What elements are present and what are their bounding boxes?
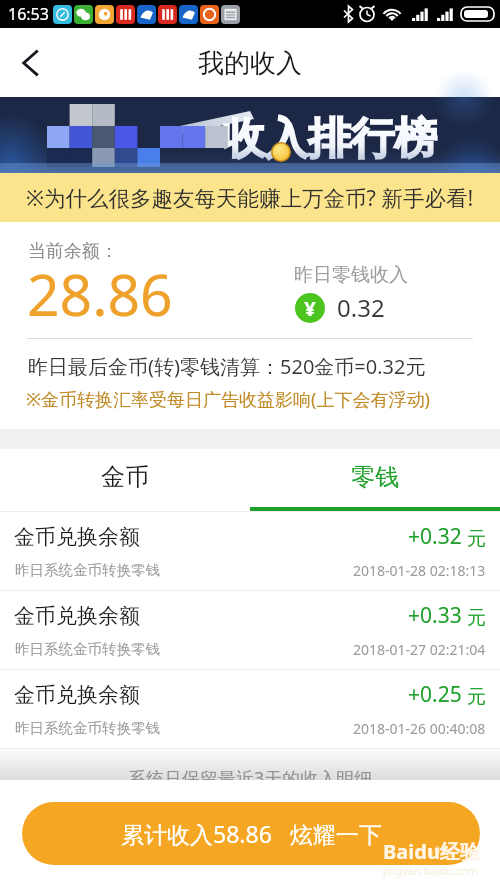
staticText: ※金币转换汇率受每日广告收益影响(上下会有浮动): [26, 387, 430, 412]
staticText: 2018-01-28 02:18:13: [353, 561, 486, 580]
button[interactable]: 金币: [0, 449, 250, 511]
button[interactable]: 金币兑换余额: [0, 591, 500, 669]
staticText: 我的收入: [198, 47, 302, 80]
staticText: 当前余额：: [28, 240, 118, 263]
staticText: 金币兑换余额: [14, 682, 140, 708]
staticText: 零钱: [351, 462, 399, 492]
staticText: +0.25: [408, 680, 462, 709]
staticText: 元: [467, 606, 486, 630]
button[interactable]: ※为什么很多趣友每天能赚上万金币? 新手必看!: [0, 173, 500, 222]
staticText: 2018-01-27 02:21:04: [353, 640, 486, 659]
button[interactable]: 收入排行榜: [0, 97, 500, 173]
staticText: Baidu经验: [383, 838, 480, 865]
staticText: 16:53: [8, 3, 49, 25]
staticText: 昨日系统金币转换零钱: [15, 561, 160, 579]
staticText: 金币兑换余额: [14, 603, 140, 629]
button[interactable]: 金币兑换余额: [0, 512, 500, 590]
staticText: 2018-01-26 00:40:08: [353, 719, 486, 738]
staticText: 昨日零钱收入: [294, 263, 408, 287]
staticText: 0.32: [337, 291, 385, 324]
staticText: +0.33: [408, 601, 462, 630]
staticText: 金币兑换余额: [14, 524, 140, 550]
staticText: 昨日最后金币(转)零钱清算：520金币=0.32元: [28, 353, 426, 380]
button[interactable]: 累计收入58.86 炫耀一下: [22, 802, 480, 865]
staticText: 昨日系统金币转换零钱: [15, 640, 160, 658]
staticText: 元: [467, 527, 486, 551]
staticText: 元: [467, 685, 486, 709]
staticText: 累计收入58.86 炫耀一下: [121, 818, 382, 849]
staticText: 昨日系统金币转换零钱: [15, 719, 160, 737]
staticText: 金币: [101, 462, 149, 492]
staticText: jingyan.baidu.com: [383, 863, 479, 878]
staticText: +0.32: [408, 522, 462, 551]
staticText: 28.86: [27, 255, 173, 333]
button[interactable]: 金币兑换余额: [0, 670, 500, 748]
staticText: ※为什么很多趣友每天能赚上万金币? 新手必看!: [26, 183, 474, 212]
staticText: ¥: [304, 295, 316, 322]
staticText: 收入排行榜: [222, 112, 437, 166]
button[interactable]: Back: [0, 32, 62, 94]
staticText: 系统只保留最近3天的收入明细: [128, 766, 373, 791]
button[interactable]: 零钱: [250, 449, 500, 511]
